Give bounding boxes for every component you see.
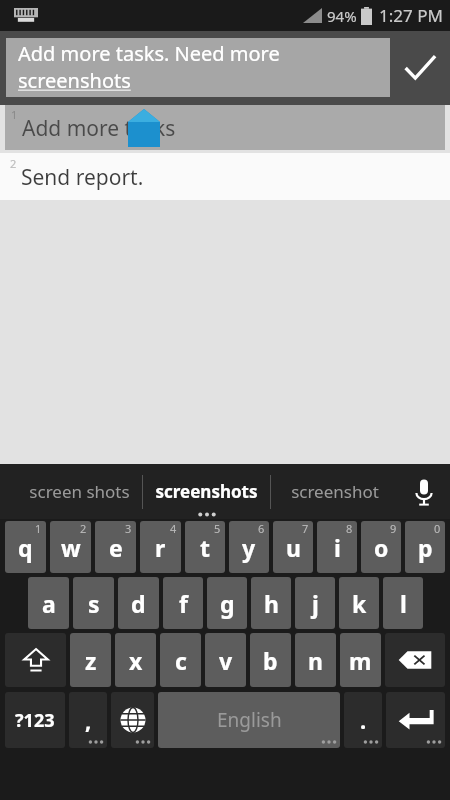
staticText: n xyxy=(308,645,323,676)
staticText: 1:27 PM xyxy=(379,4,443,27)
staticText: 1 xyxy=(11,107,18,122)
staticText: m xyxy=(349,645,372,676)
staticText: English xyxy=(217,707,282,733)
button[interactable]: Enter xyxy=(386,692,445,748)
staticText: t xyxy=(200,532,210,563)
staticText: v xyxy=(219,645,233,676)
button[interactable]: Change language xyxy=(111,692,154,748)
staticText: y xyxy=(242,532,256,563)
staticText: e xyxy=(109,532,123,563)
staticText: b xyxy=(263,645,278,676)
staticText: d xyxy=(131,588,146,619)
button[interactable]: u xyxy=(273,521,313,573)
button[interactable]: Backspace xyxy=(385,633,445,687)
staticText: screenshots xyxy=(18,67,131,94)
button[interactable]: h xyxy=(251,577,291,629)
button[interactable]: t xyxy=(185,521,225,573)
staticText: i xyxy=(334,532,341,563)
staticText: 4 xyxy=(170,521,177,536)
button[interactable]: . xyxy=(344,692,382,748)
button[interactable]: d xyxy=(118,577,159,629)
staticText: 5 xyxy=(214,521,221,536)
button[interactable]: s xyxy=(73,577,114,629)
staticText: 2 xyxy=(10,156,17,171)
button[interactable]: w xyxy=(50,521,91,573)
staticText: p xyxy=(418,532,433,563)
staticText: 0 xyxy=(434,521,441,536)
staticText: ?123 xyxy=(15,708,55,733)
staticText: 1 xyxy=(35,521,42,536)
staticText: 9 xyxy=(390,521,397,536)
button[interactable]: English xyxy=(158,692,340,748)
button[interactable]: x xyxy=(115,633,156,687)
staticText: u xyxy=(286,532,301,563)
button[interactable]: k xyxy=(339,577,379,629)
staticText: screen shots xyxy=(29,480,130,503)
button[interactable]: screenshot xyxy=(271,464,398,519)
button[interactable]: e xyxy=(95,521,136,573)
staticText: z xyxy=(85,645,97,676)
button[interactable]: m xyxy=(340,633,381,687)
staticText: c xyxy=(175,645,187,676)
staticText: q xyxy=(18,532,33,563)
button[interactable]: screenshots xyxy=(143,464,270,519)
button[interactable]: z xyxy=(70,633,111,687)
other: Keyboard active xyxy=(14,8,38,23)
staticText: s xyxy=(88,588,100,619)
button[interactable]: a xyxy=(28,577,69,629)
button[interactable]: l xyxy=(383,577,423,629)
staticText: 2 xyxy=(80,521,87,536)
staticText: g xyxy=(220,588,235,619)
staticText: Send report. xyxy=(21,163,144,192)
button[interactable]: q xyxy=(5,521,46,573)
button[interactable]: v xyxy=(205,633,246,687)
button[interactable]: c xyxy=(160,633,201,687)
staticText: 94% xyxy=(327,6,357,26)
button[interactable]: n xyxy=(295,633,336,687)
button[interactable]: Add more tasks. Need more xyxy=(6,38,390,97)
staticText: 6 xyxy=(258,521,265,536)
staticText: Add more tasks. Need more xyxy=(18,40,280,67)
button[interactable]: j xyxy=(295,577,335,629)
button[interactable]: b xyxy=(250,633,291,687)
staticText: w xyxy=(61,532,81,563)
staticText: screenshot xyxy=(291,480,379,503)
button[interactable]: screen shots xyxy=(16,464,142,519)
staticText: Add more tasks xyxy=(22,114,176,143)
staticText: j xyxy=(312,588,319,619)
button[interactable]: 2 xyxy=(0,153,450,200)
staticText: x xyxy=(129,645,143,676)
staticText: l xyxy=(400,588,407,619)
staticText: , xyxy=(85,705,92,735)
button[interactable]: 1 xyxy=(5,105,445,150)
staticText: r xyxy=(155,532,166,563)
staticText: screenshots xyxy=(155,480,258,503)
staticText: 7 xyxy=(302,521,309,536)
staticText: a xyxy=(42,588,56,619)
button[interactable]: p xyxy=(405,521,445,573)
button[interactable]: r xyxy=(140,521,181,573)
staticText: 3 xyxy=(125,521,132,536)
staticText: f xyxy=(179,588,188,619)
button[interactable]: , xyxy=(69,692,107,748)
staticText: h xyxy=(264,588,279,619)
button[interactable]: o xyxy=(361,521,401,573)
button[interactable]: Shift xyxy=(5,633,66,687)
button[interactable]: ?123 xyxy=(5,692,65,748)
staticText: . xyxy=(360,705,367,735)
staticText: o xyxy=(374,532,389,563)
button[interactable]: y xyxy=(229,521,269,573)
staticText: k xyxy=(352,588,367,619)
button[interactable]: Done xyxy=(390,38,450,98)
button[interactable]: f xyxy=(163,577,203,629)
button[interactable]: Voice input xyxy=(398,464,450,519)
button[interactable]: g xyxy=(207,577,247,629)
staticText: 8 xyxy=(346,521,353,536)
button[interactable]: i xyxy=(317,521,357,573)
